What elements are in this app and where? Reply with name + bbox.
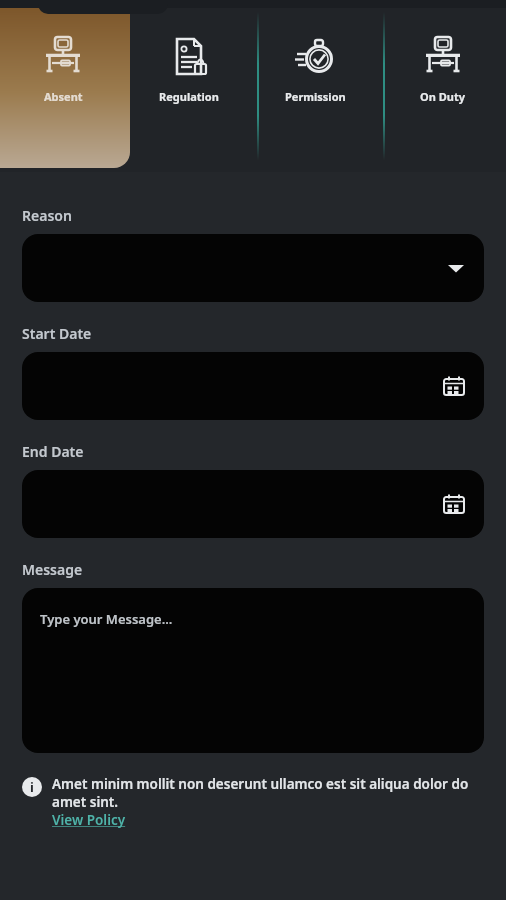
staticText: Absent	[44, 89, 83, 104]
staticText: Start Date	[22, 324, 92, 343]
button[interactable]: On Duty	[379, 0, 506, 172]
button[interactable]: Pick date	[22, 352, 484, 420]
staticText: On Duty	[420, 89, 465, 104]
button[interactable]: Absent	[0, 0, 126, 172]
button[interactable]: View Policy	[52, 811, 126, 829]
button[interactable]: Type your Message...	[22, 588, 484, 753]
button[interactable]: Regulation	[126, 0, 252, 172]
staticText: Amet minim mollit non deserunt ullamco e…	[52, 775, 484, 811]
button[interactable]: Pick date	[22, 470, 484, 538]
staticText: Message	[22, 560, 83, 579]
staticText: i	[30, 778, 34, 796]
staticText: Regulation	[159, 89, 219, 104]
staticText: Type your Message...	[40, 610, 173, 628]
button[interactable]: Select reason	[22, 234, 484, 302]
button[interactable]: Permission	[252, 0, 379, 172]
staticText: Permission	[285, 89, 346, 104]
staticText: End Date	[22, 442, 84, 461]
staticText: Reason	[22, 206, 72, 225]
staticText: View Policy	[52, 811, 126, 829]
